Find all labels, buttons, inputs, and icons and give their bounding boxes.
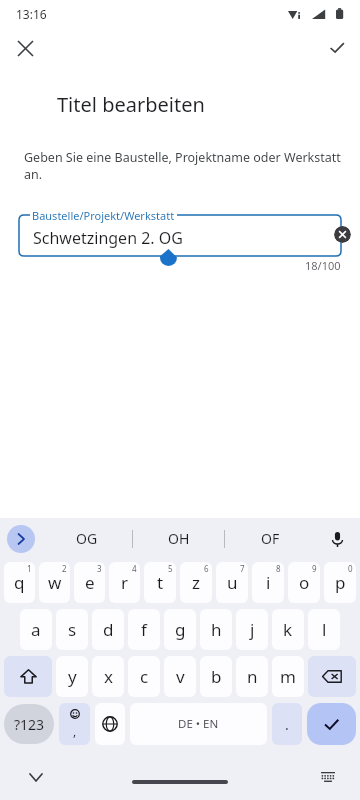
button[interactable]: b [200, 656, 232, 697]
staticText: 5 [168, 563, 173, 574]
button[interactable]: More suggestions [7, 525, 35, 553]
button[interactable]: OG [42, 518, 132, 559]
button[interactable]: n [236, 656, 268, 697]
staticText: o [299, 571, 310, 594]
staticText: s [68, 618, 77, 641]
button[interactable]: q [4, 562, 35, 603]
staticText: u [227, 571, 238, 594]
staticText: . [285, 715, 289, 734]
staticText: Titel bearbeiten [57, 91, 205, 118]
staticText: Baustelle/Projekt/Werkstatt [32, 208, 175, 223]
button[interactable]: k [272, 609, 304, 650]
button[interactable]: DE • EN [130, 703, 267, 745]
staticText: g [175, 618, 186, 641]
staticText: 3 [97, 563, 102, 574]
button[interactable]: Save [321, 32, 353, 64]
button[interactable]: Clear text [334, 226, 351, 243]
staticText: 18/100 [305, 258, 341, 273]
staticText: 13:16 [16, 6, 47, 22]
staticText: 9 [312, 563, 317, 574]
button[interactable]: Shift [4, 656, 52, 697]
staticText: z [192, 571, 200, 594]
staticText: Geben Sie eine Baustelle, Projektname od… [24, 149, 360, 183]
button[interactable]: Emoji and comma [59, 703, 90, 745]
button[interactable]: d [92, 609, 124, 650]
staticText: ?123 [14, 715, 45, 734]
staticText: OG [76, 529, 98, 548]
staticText: y [68, 665, 77, 688]
button[interactable]: j [236, 609, 268, 650]
button[interactable]: Voice input [322, 524, 352, 554]
staticText: 7 [240, 563, 245, 574]
staticText: f [141, 618, 147, 641]
staticText: x [104, 665, 113, 688]
button[interactable]: o [288, 562, 320, 603]
staticText: 6 [204, 563, 209, 574]
staticText: d [103, 618, 114, 641]
staticText: b [211, 665, 222, 688]
staticText: w [48, 571, 62, 594]
staticText: 4 [132, 563, 137, 574]
button[interactable]: f [128, 609, 160, 650]
button[interactable]: t [144, 562, 176, 603]
staticText: OF [261, 529, 280, 548]
button[interactable]: i [252, 562, 284, 603]
button[interactable]: x [92, 656, 124, 697]
button[interactable]: Change language [95, 703, 125, 745]
button[interactable]: r [109, 562, 140, 603]
staticText: v [176, 665, 185, 688]
staticText: i [266, 571, 271, 594]
button[interactable]: c [128, 656, 160, 697]
staticText: h [211, 618, 222, 641]
button[interactable]: v [164, 656, 196, 697]
staticText: l [322, 618, 327, 641]
staticText: t [157, 571, 164, 594]
staticText: , [73, 723, 77, 739]
button[interactable]: z [180, 562, 212, 603]
button[interactable]: . [272, 703, 302, 745]
button[interactable]: m [272, 656, 304, 697]
staticText: Schwetzingen 2. OG [33, 227, 183, 249]
button[interactable]: ?123 [4, 704, 54, 744]
staticText: j [250, 618, 255, 641]
button[interactable]: h [200, 609, 232, 650]
button[interactable]: Hide keyboard [22, 763, 50, 791]
button[interactable]: y [56, 656, 88, 697]
staticText: 1 [27, 563, 32, 574]
button[interactable]: u [216, 562, 248, 603]
staticText: OH [168, 529, 190, 548]
button[interactable]: l [308, 609, 340, 650]
button[interactable]: OF [225, 518, 316, 559]
staticText: k [283, 618, 293, 641]
staticText: DE • EN [178, 716, 219, 732]
staticText: q [14, 571, 25, 594]
staticText: 8 [276, 563, 281, 574]
staticText: a [31, 618, 41, 641]
button[interactable]: OH [133, 518, 224, 559]
staticText: 0 [348, 563, 353, 574]
button[interactable]: Backspace [308, 656, 356, 697]
button[interactable]: Enter [307, 703, 356, 745]
staticText: p [335, 571, 346, 594]
button[interactable]: p [324, 562, 356, 603]
button[interactable]: a [20, 609, 52, 650]
button[interactable]: w [39, 562, 70, 603]
button[interactable]: Switch keyboard [314, 763, 342, 791]
staticText: n [247, 665, 258, 688]
staticText: 2 [62, 563, 67, 574]
button[interactable]: e [74, 562, 105, 603]
staticText: c [140, 665, 149, 688]
staticText: m [280, 665, 296, 688]
staticText: e [85, 571, 95, 594]
button[interactable]: Close [9, 32, 41, 64]
staticText: r [121, 571, 129, 594]
button[interactable]: g [164, 609, 196, 650]
button[interactable]: s [56, 609, 88, 650]
